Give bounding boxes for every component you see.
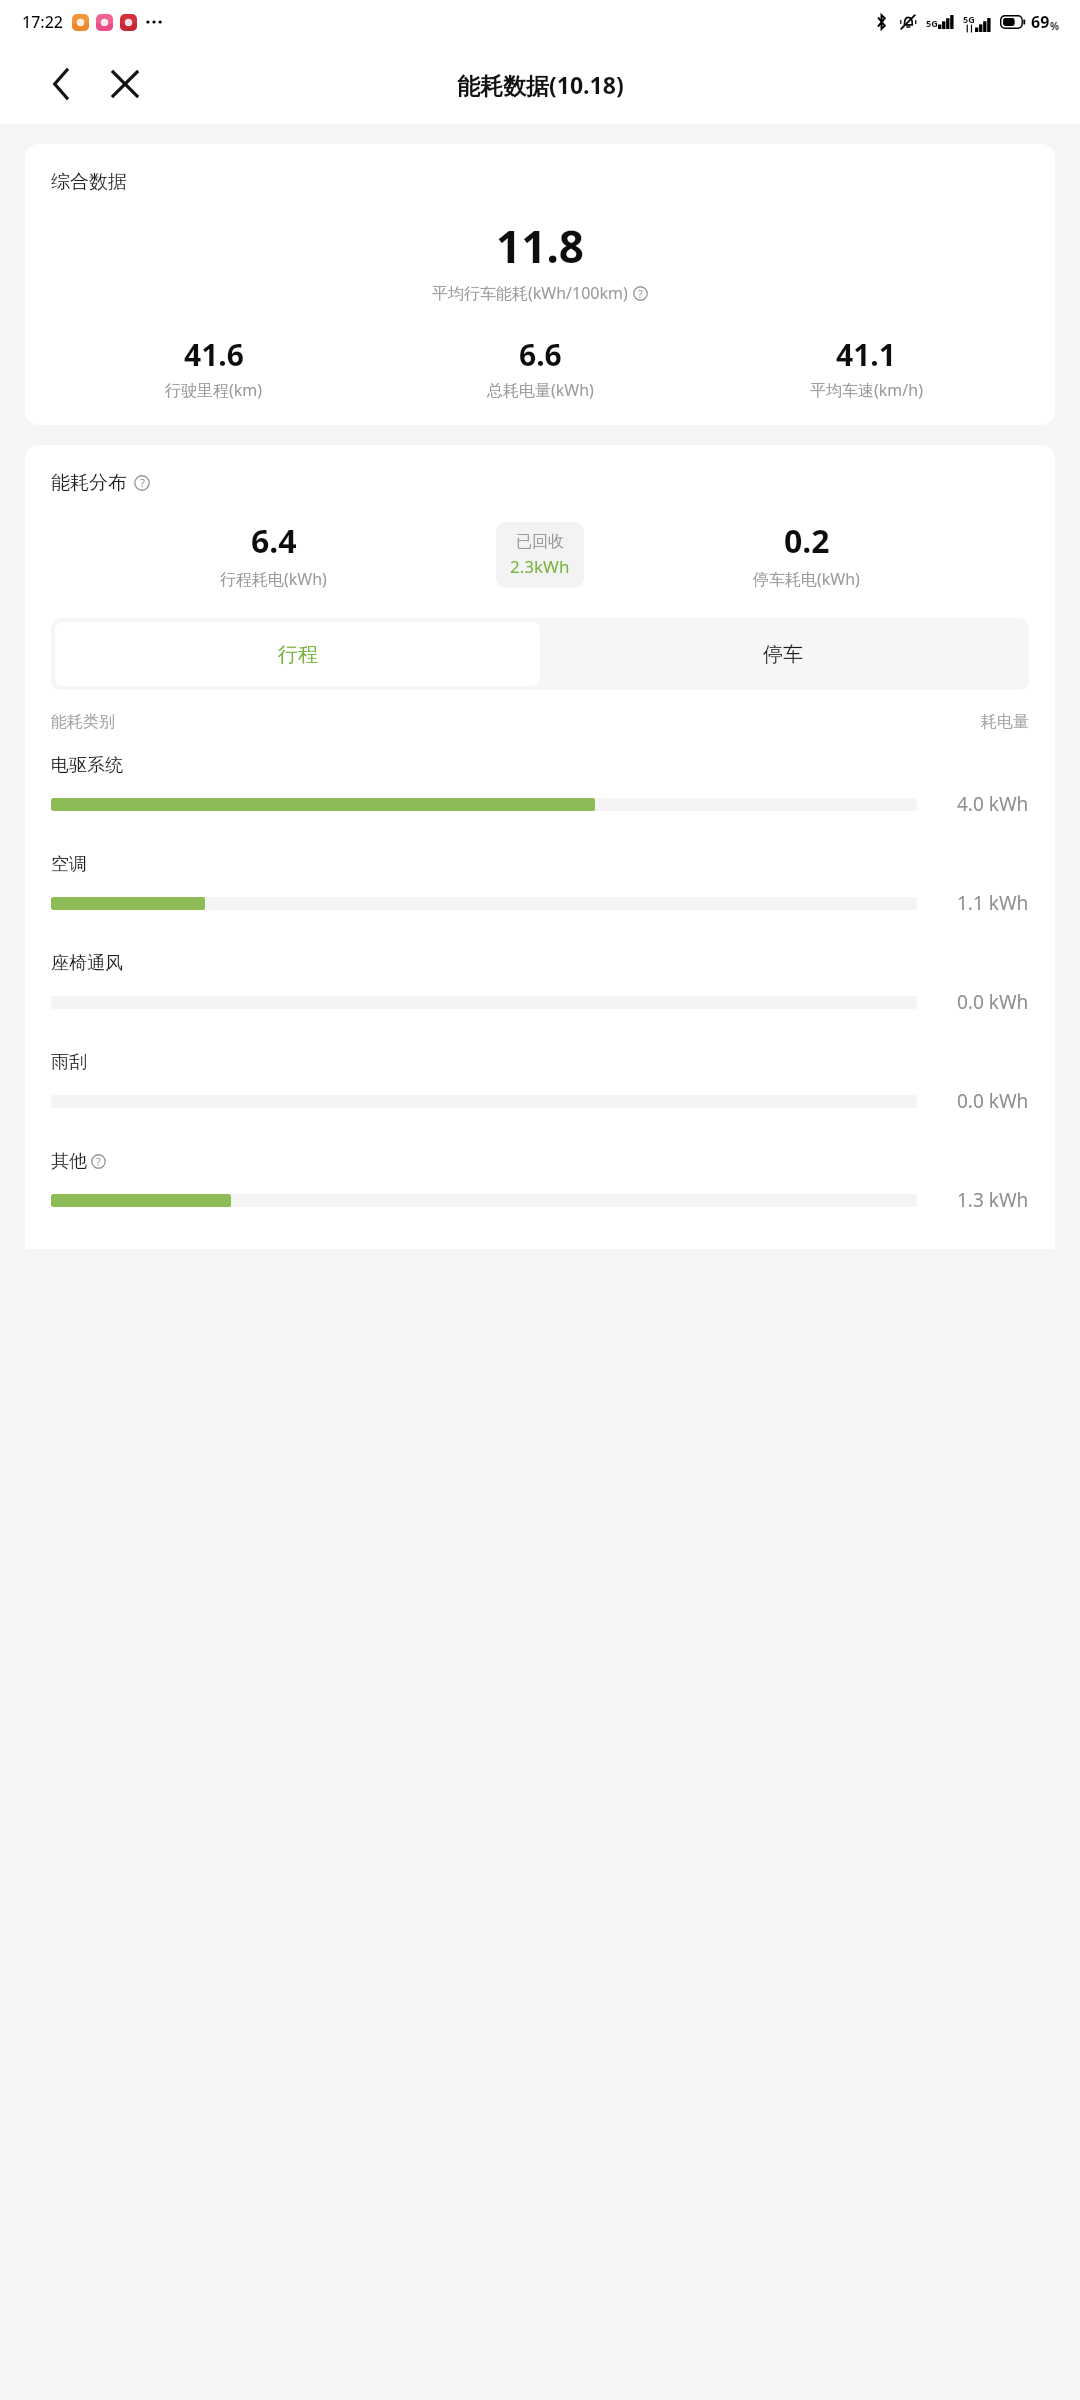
staticText: 雨刮 xyxy=(51,1051,87,1074)
staticText: 电驱系统 xyxy=(51,754,123,777)
staticText: 17:22 xyxy=(22,11,63,33)
staticText: 停车 xyxy=(763,642,803,667)
staticText: 平均车速(km/h) xyxy=(810,379,923,401)
staticText: 0.0 kWh xyxy=(957,989,1029,1015)
staticText: 0.2 xyxy=(784,519,830,563)
staticText: 41.1 xyxy=(836,334,896,375)
staticText: 行程 xyxy=(278,642,318,667)
staticText: 行驶里程(km) xyxy=(165,379,263,401)
staticText: 已回收 xyxy=(516,532,564,552)
button[interactable]: 停车 xyxy=(540,622,1025,686)
button[interactable]: 其他 xyxy=(51,1150,1029,1249)
staticText: 能耗类别 xyxy=(51,712,115,732)
staticText: 其他 xyxy=(51,1150,87,1173)
button[interactable]: 座椅通风 xyxy=(51,952,1029,1051)
staticText: ? xyxy=(140,475,145,491)
staticText: 2.3kWh xyxy=(510,555,570,578)
staticText: 69 xyxy=(1031,11,1050,33)
button[interactable]: 电驱系统 xyxy=(51,754,1029,853)
staticText: 6.6 xyxy=(519,334,562,375)
staticText: % xyxy=(1050,19,1060,33)
staticText: 空调 xyxy=(51,853,87,876)
staticText: 1.1 kWh xyxy=(957,890,1029,916)
button[interactable]: 空调 xyxy=(51,853,1029,952)
staticText: 能耗数据(10.18) xyxy=(457,69,624,100)
staticText: 4.0 kWh xyxy=(957,791,1029,817)
staticText: 总耗电量(kWh) xyxy=(487,379,594,401)
staticText: 5G xyxy=(963,13,975,25)
staticText: 座椅通风 xyxy=(51,952,123,975)
staticText: 行程耗电(kWh) xyxy=(220,568,327,590)
staticText: 41.6 xyxy=(184,334,244,375)
staticText: 停车耗电(kWh) xyxy=(753,568,860,590)
staticText: 6.4 xyxy=(251,519,297,563)
staticText: 综合数据 xyxy=(51,170,127,194)
staticText: 耗电量 xyxy=(981,712,1029,732)
staticText: 平均行车能耗(kWh/100km) xyxy=(432,282,628,304)
staticText: 11.8 xyxy=(51,216,1029,276)
button[interactable]: 行程 xyxy=(55,622,540,686)
staticText: 5G xyxy=(926,17,938,29)
staticText: 0.0 kWh xyxy=(957,1088,1029,1114)
button[interactable]: Close xyxy=(102,61,148,107)
button[interactable]: 雨刮 xyxy=(51,1051,1029,1150)
button[interactable]: Back xyxy=(38,61,84,107)
staticText: ? xyxy=(638,286,643,301)
staticText: ? xyxy=(96,1154,101,1169)
staticText: 能耗分布 xyxy=(51,471,127,495)
staticText: 1.3 kWh xyxy=(957,1187,1029,1213)
